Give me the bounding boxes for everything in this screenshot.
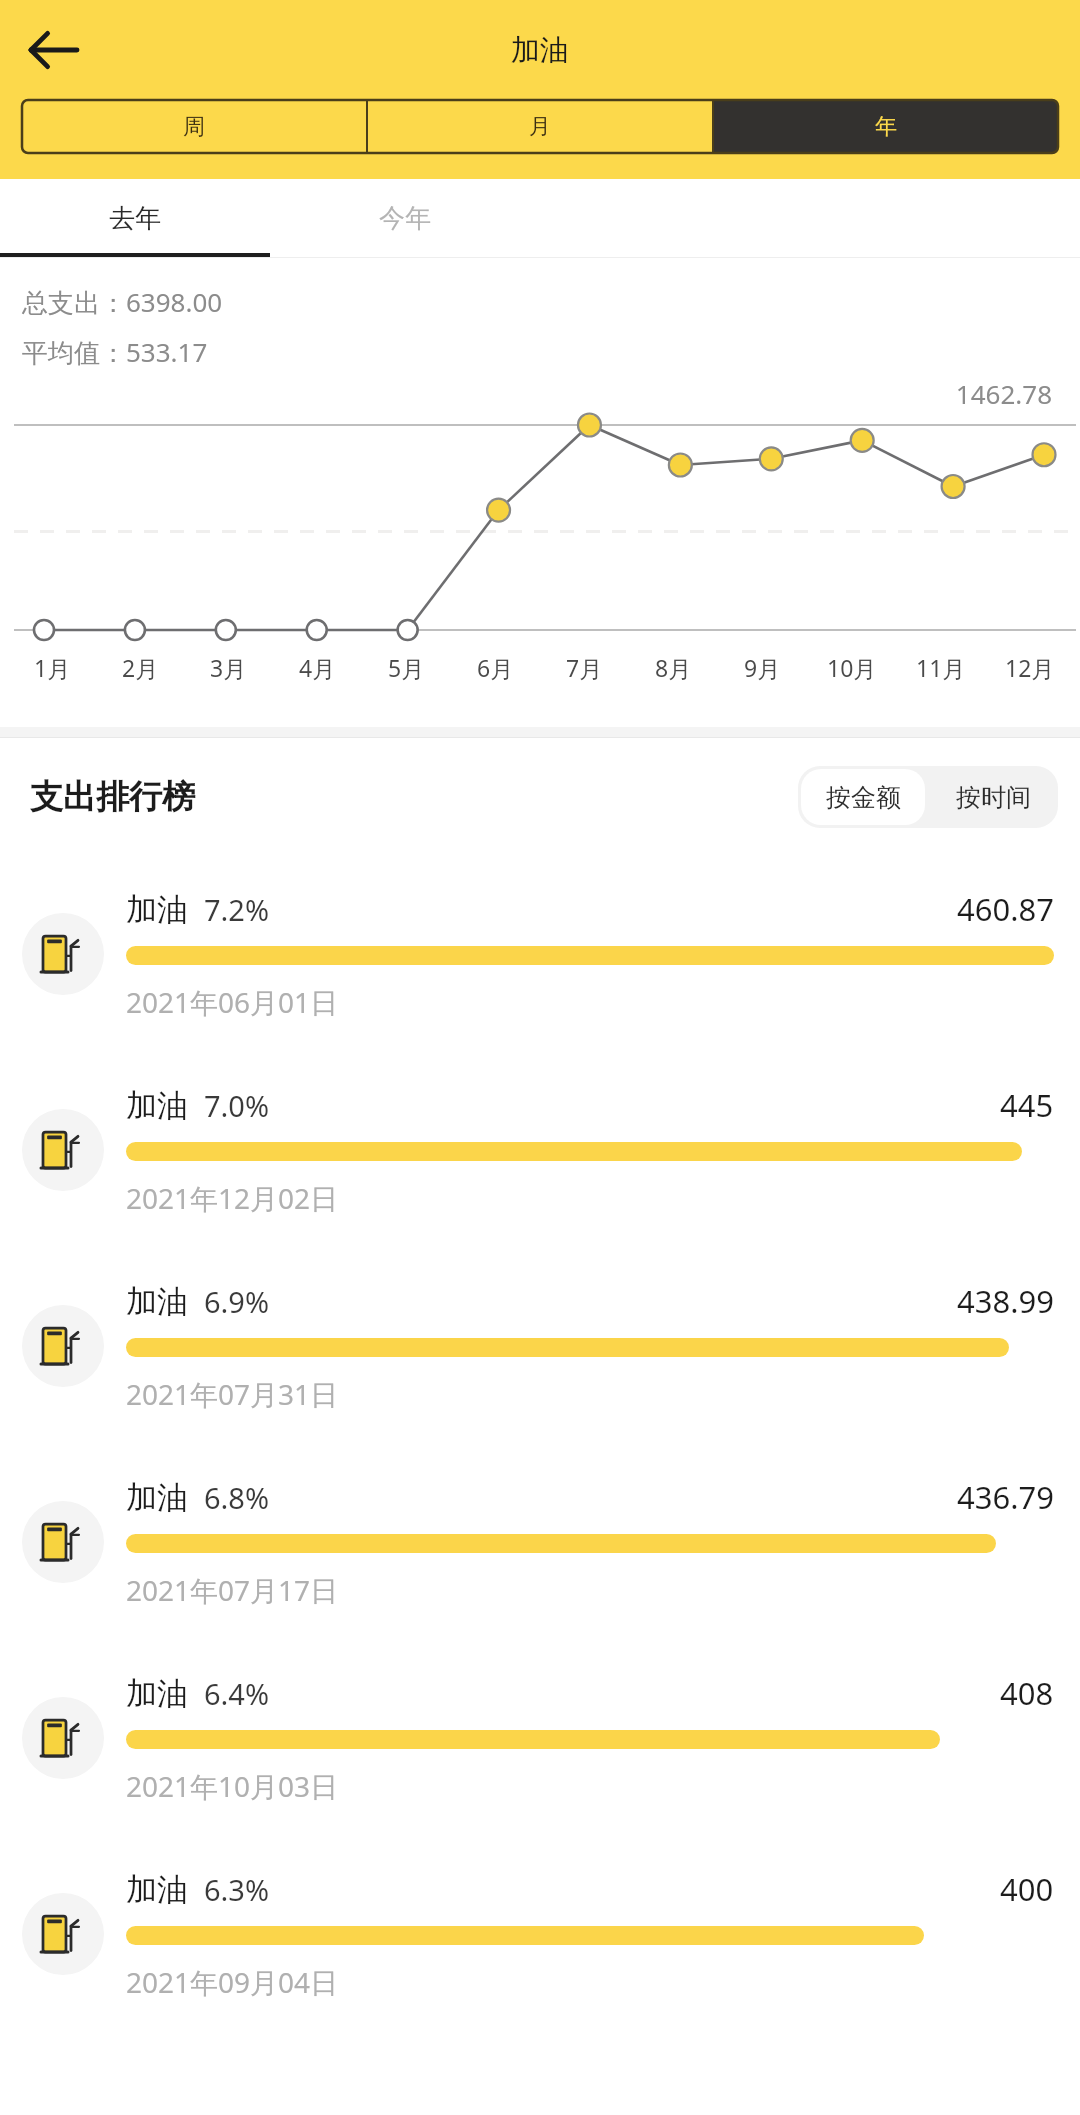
staticText: 今年 [379, 202, 431, 235]
button[interactable]: 去年 [0, 179, 270, 257]
staticText: 400 [1000, 1868, 1054, 1910]
staticText: 6.8% [204, 1478, 270, 1517]
staticText: 11月 [916, 652, 966, 683]
staticText: 2021年06月01日 [126, 983, 339, 1021]
button[interactable]: 加油 [0, 1052, 1080, 1248]
staticText: 408 [1000, 1672, 1054, 1714]
staticText: 436.79 [957, 1476, 1054, 1518]
staticText: 8月 [655, 652, 692, 683]
staticText: 460.87 [957, 888, 1054, 930]
staticText: 7.0% [204, 1086, 270, 1125]
staticText: 加油 [126, 1870, 188, 1909]
button[interactable]: Back [22, 18, 86, 82]
staticText: 445 [1000, 1084, 1054, 1126]
staticText: 2021年10月03日 [126, 1767, 339, 1805]
staticText: 加油 [126, 1086, 188, 1125]
staticText: 4月 [299, 652, 336, 683]
staticText: 2021年12月02日 [126, 1179, 339, 1217]
staticText: 2021年09月04日 [126, 1963, 339, 2001]
staticText: 5月 [388, 652, 425, 683]
staticText: 按金额 [826, 782, 901, 813]
staticText: 3月 [210, 652, 247, 683]
staticText: 加油 [126, 1282, 188, 1321]
staticText: 2021年07月31日 [126, 1375, 339, 1413]
staticText: 7月 [566, 652, 603, 683]
button[interactable]: 加油 [0, 1836, 1080, 2032]
button[interactable]: 加油 [0, 1444, 1080, 1640]
staticText: 加油 [126, 1478, 188, 1517]
staticText: 年 [875, 113, 897, 141]
button[interactable]: 周 [22, 100, 366, 153]
button[interactable]: 按时间 [928, 766, 1058, 828]
button[interactable]: 今年 [270, 179, 540, 257]
staticText: 1月 [34, 652, 71, 683]
staticText: 加油 [126, 1674, 188, 1713]
staticText: 10月 [827, 652, 877, 683]
staticText: 加油 [126, 890, 188, 929]
staticText: 2月 [122, 652, 159, 683]
staticText: 7.2% [204, 890, 270, 929]
staticText: 6.3% [204, 1870, 270, 1909]
staticText: 12月 [1005, 652, 1055, 683]
button[interactable]: 加油 [0, 856, 1080, 1052]
staticText: 6.9% [204, 1282, 270, 1321]
staticText: 1462.78 [0, 376, 1052, 411]
staticText: 9月 [744, 652, 781, 683]
button[interactable]: 月 [368, 100, 712, 153]
staticText: 周 [183, 113, 205, 141]
button[interactable]: 年 [714, 100, 1058, 153]
staticText: 加油 [511, 32, 569, 69]
staticText: 总支出：6398.00 [22, 284, 223, 320]
button[interactable]: 加油 [0, 1640, 1080, 1836]
staticText: 月 [529, 113, 551, 141]
staticText: 438.99 [957, 1280, 1054, 1322]
staticText: 去年 [109, 202, 161, 235]
staticText: 支出排行榜 [30, 776, 195, 818]
button[interactable]: 按金额 [801, 769, 925, 825]
staticText: 2021年07月17日 [126, 1571, 339, 1609]
button[interactable]: 加油 [0, 1248, 1080, 1444]
staticText: 平均值：533.17 [22, 334, 208, 370]
staticText: 6.4% [204, 1674, 270, 1713]
staticText: 按时间 [956, 782, 1031, 813]
staticText: 6月 [477, 652, 514, 683]
